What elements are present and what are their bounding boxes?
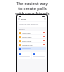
staticText: What do you want for breakfast?: [19, 23, 45, 26]
button[interactable]: Lunch spot: [18, 31, 46, 34]
staticText: Weekend trip: [22, 44, 33, 46]
button[interactable]: Weekend trip: [18, 43, 46, 46]
button[interactable]: Team name: [18, 39, 46, 42]
button[interactable]: Profile: [17, 17, 47, 21]
staticText: Movie night: [22, 36, 32, 38]
button[interactable]: [18, 52, 31, 59]
button[interactable]: Movie night: [18, 35, 46, 38]
staticText: Recent: [19, 28, 25, 30]
staticText: Team name: [22, 40, 32, 42]
button[interactable]: [18, 47, 46, 50]
staticText: Lunch spot: [22, 32, 31, 34]
staticText: with your friends: [15, 11, 50, 16]
button[interactable]: What do you want for breakfast?: [18, 22, 46, 27]
staticText: to create polls: [18, 6, 47, 11]
staticText: The easiest way: [16, 1, 48, 6]
staticText: Polls: [21, 18, 27, 21]
button[interactable]: [32, 52, 46, 59]
